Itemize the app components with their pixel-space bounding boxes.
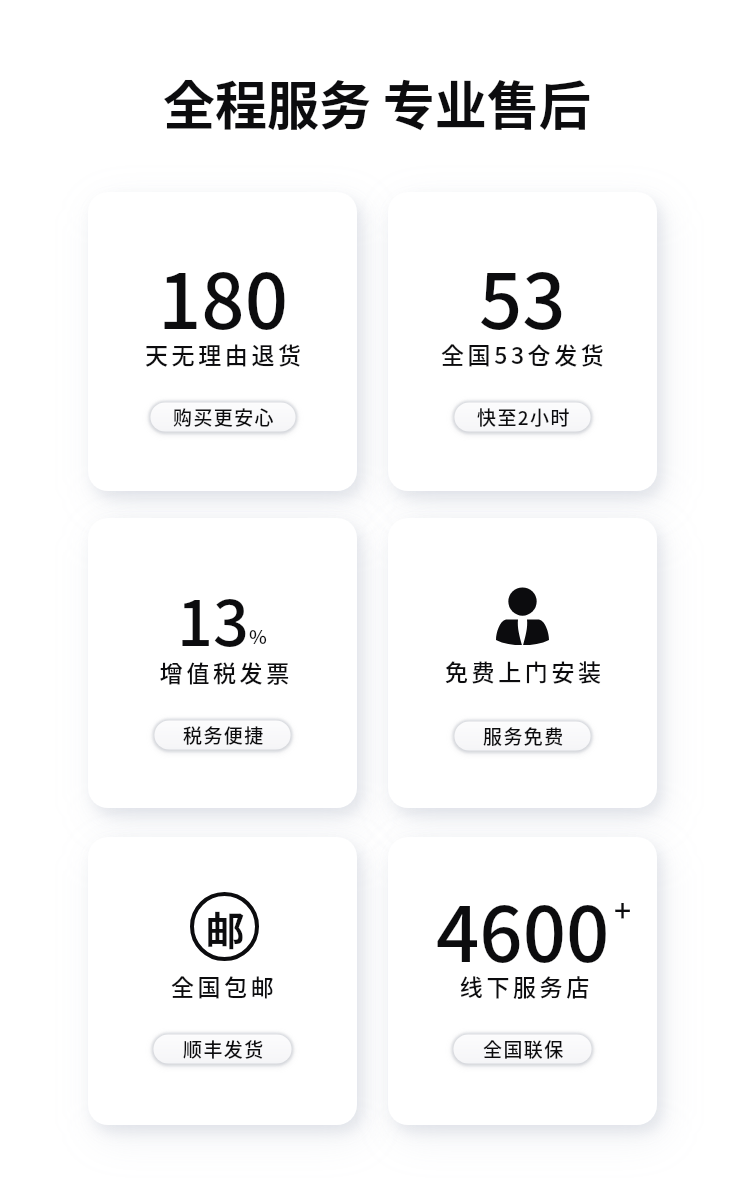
button[interactable]: 税务便捷 [145, 711, 300, 759]
staticText: 天无理由退货 [145, 337, 305, 370]
staticText: 邮 [205, 900, 245, 956]
staticText: 全程服务 专业售后 [163, 65, 591, 140]
button[interactable]: Nationwide free shipping [88, 837, 357, 1125]
staticText: 顺丰发货 [183, 1035, 265, 1063]
staticText: 180 [158, 241, 288, 351]
staticText: 购买更安心 [173, 403, 276, 431]
staticText: 13 [177, 573, 249, 664]
staticText: + [614, 887, 632, 930]
other: Free on-site installation [496, 587, 549, 646]
staticText: 免费上门安装 [445, 654, 605, 687]
staticText: 全国包邮 [171, 969, 278, 1002]
other: Nationwide free shipping [190, 892, 259, 961]
staticText: 服务免费 [483, 722, 565, 750]
button[interactable]: 服务免费 [445, 712, 600, 760]
staticText: 税务便捷 [183, 721, 265, 749]
button[interactable]: 全国联保 [444, 1025, 601, 1073]
button[interactable]: 53 [388, 192, 657, 491]
button[interactable]: 4600 [388, 837, 657, 1125]
button[interactable]: 13 [88, 518, 357, 808]
staticText: 增值税发票 [158, 655, 291, 688]
staticText: % [249, 622, 267, 650]
button[interactable]: 购买更安心 [141, 393, 305, 441]
button[interactable]: Free on-site installation [388, 518, 657, 808]
button[interactable]: 顺丰发货 [144, 1025, 301, 1073]
button[interactable]: 180 [88, 192, 357, 491]
staticText: 全国联保 [483, 1035, 565, 1063]
staticText: 53 [479, 241, 566, 351]
staticText: 全国53仓发货 [441, 337, 608, 370]
staticText: 线下服务店 [458, 969, 591, 1002]
button[interactable]: 快至2小时 [445, 393, 600, 441]
staticText: 4600 [436, 874, 610, 984]
staticText: 快至2小时 [477, 403, 571, 431]
